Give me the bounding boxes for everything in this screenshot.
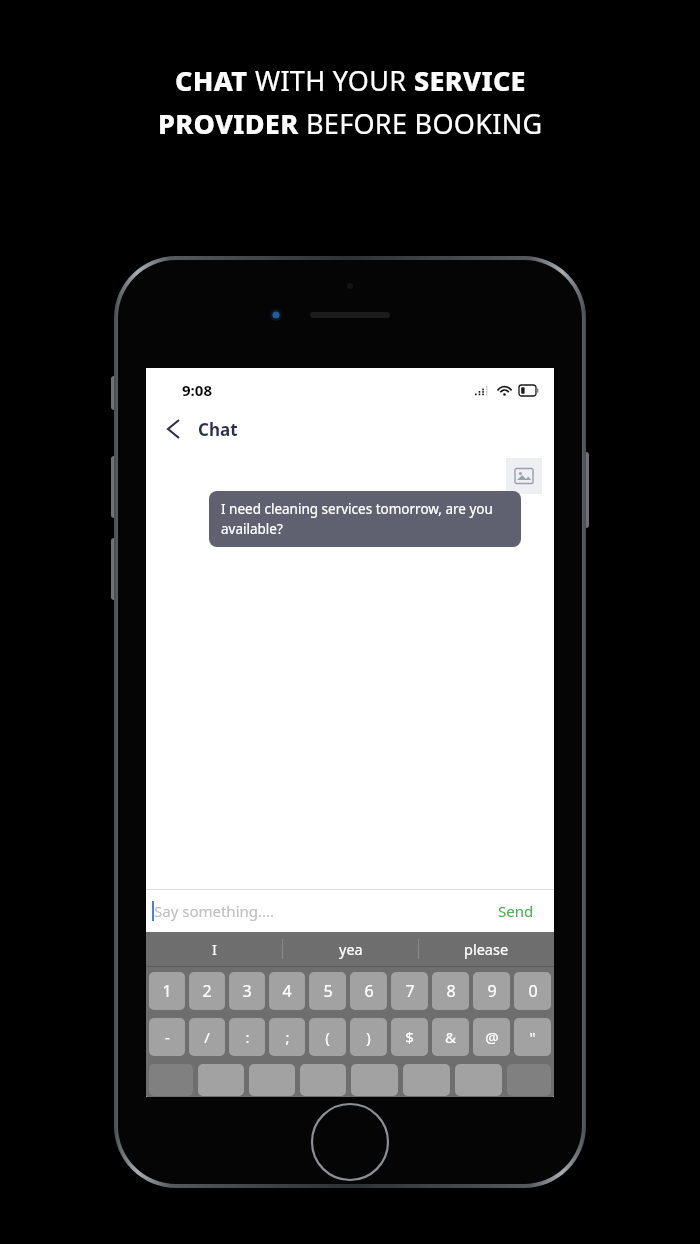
button[interactable]: ;: [269, 1018, 305, 1056]
button[interactable]: Send: [494, 895, 538, 927]
staticText: SERVICE: [414, 62, 526, 99]
button[interactable]: $: [391, 1018, 428, 1056]
staticText: ;: [285, 1027, 290, 1047]
button[interactable]: please: [419, 932, 554, 966]
button[interactable]: ): [350, 1018, 387, 1056]
staticText: yea: [339, 939, 363, 959]
staticText: 3: [242, 980, 252, 1002]
staticText: 6: [364, 980, 374, 1002]
button[interactable]: 1: [149, 972, 185, 1010]
button[interactable]: 3: [229, 972, 265, 1010]
staticText: 9:08: [182, 380, 212, 400]
button[interactable]: [198, 1064, 244, 1096]
staticText: PROVIDER: [158, 105, 306, 142]
button[interactable]: 2: [189, 972, 225, 1010]
staticText: &: [445, 1027, 456, 1047]
staticText: 2: [202, 980, 212, 1002]
button[interactable]: [249, 1064, 295, 1096]
button[interactable]: 6: [350, 972, 387, 1010]
staticText: Chat: [198, 418, 238, 441]
button[interactable]: /: [189, 1018, 225, 1056]
staticText: -: [165, 1027, 170, 1047]
button[interactable]: @: [473, 1018, 510, 1056]
button[interactable]: 5: [309, 972, 346, 1010]
button[interactable]: 0: [514, 972, 551, 1010]
button[interactable]: (: [309, 1018, 346, 1056]
staticText: $: [405, 1027, 414, 1047]
button[interactable]: 7: [391, 972, 428, 1010]
button[interactable]: I need cleaning services tomorrow, are y…: [209, 491, 521, 547]
staticText: WITH YOUR: [255, 62, 414, 99]
staticText: CHAT: [175, 62, 255, 99]
button[interactable]: [300, 1064, 346, 1096]
button[interactable]: yea: [283, 932, 418, 966]
button[interactable]: -: [149, 1018, 185, 1056]
staticText: ): [366, 1027, 371, 1047]
staticText: 7: [405, 980, 415, 1002]
staticText: BEFORE BOOKING: [306, 105, 543, 142]
button[interactable]: Say something....: [152, 901, 494, 921]
staticText: please: [464, 939, 509, 959]
staticText: Say something....: [154, 901, 275, 921]
staticText: 5: [323, 980, 333, 1002]
staticText: Send: [498, 901, 534, 921]
staticText: /: [204, 1027, 210, 1047]
button[interactable]: 9: [473, 972, 510, 1010]
button[interactable]: &: [432, 1018, 469, 1056]
staticText: 0: [528, 980, 538, 1002]
button[interactable]: 4: [269, 972, 305, 1010]
button[interactable]: [455, 1064, 502, 1096]
button[interactable]: 8: [432, 972, 469, 1010]
staticText: 4: [282, 980, 292, 1002]
button[interactable]: [403, 1064, 450, 1096]
staticText: 9: [487, 980, 497, 1002]
staticText: 1: [162, 980, 172, 1002]
staticText: (: [325, 1027, 330, 1047]
staticText: ": [529, 1027, 536, 1047]
staticText: :: [245, 1027, 250, 1047]
button[interactable]: :: [229, 1018, 265, 1056]
button[interactable]: Back: [156, 412, 190, 446]
button[interactable]: [351, 1064, 398, 1096]
staticText: 8: [446, 980, 456, 1002]
button[interactable]: I: [146, 932, 282, 966]
staticText: @: [485, 1027, 499, 1047]
staticText: I need cleaning services tomorrow, are y…: [221, 500, 509, 538]
button[interactable]: Attach image: [506, 458, 542, 494]
staticText: I: [212, 939, 217, 959]
button[interactable]: ": [514, 1018, 551, 1056]
